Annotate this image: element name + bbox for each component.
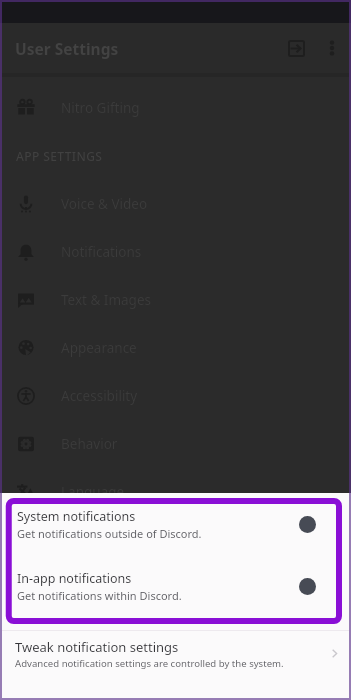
staticText: Text & Images <box>61 291 151 309</box>
staticText: Get notifications within Discord. <box>17 588 182 603</box>
staticText: Notifications <box>61 243 142 261</box>
staticText: Get notifications outside of Discord. <box>17 526 202 541</box>
staticText: In-app notifications <box>17 570 132 587</box>
staticText: Nitro Gifting <box>61 99 140 117</box>
staticText: Advanced notification settings are contr… <box>15 657 284 670</box>
button[interactable]: Tweak notification settings <box>2 631 349 698</box>
staticText: Accessibility <box>61 387 138 405</box>
button[interactable]: System notifications <box>8 506 349 568</box>
button[interactable]: Log out <box>275 27 317 69</box>
staticText: Voice & Video <box>61 195 148 213</box>
staticText: Appearance <box>61 339 137 357</box>
button[interactable]: Toggle <box>299 578 316 595</box>
button[interactable]: Language <box>2 468 349 516</box>
staticText: System notifications <box>17 508 136 525</box>
staticText: User Settings <box>15 38 119 59</box>
staticText: APP SETTINGS <box>16 148 103 164</box>
button[interactable]: Toggle <box>299 516 316 533</box>
button[interactable]: Open notification settings <box>319 638 349 668</box>
staticText: Tweak notification settings <box>15 638 179 656</box>
button[interactable]: In-app notifications <box>8 568 349 630</box>
staticText: Behavior <box>61 435 118 453</box>
staticText: Language <box>61 483 125 501</box>
